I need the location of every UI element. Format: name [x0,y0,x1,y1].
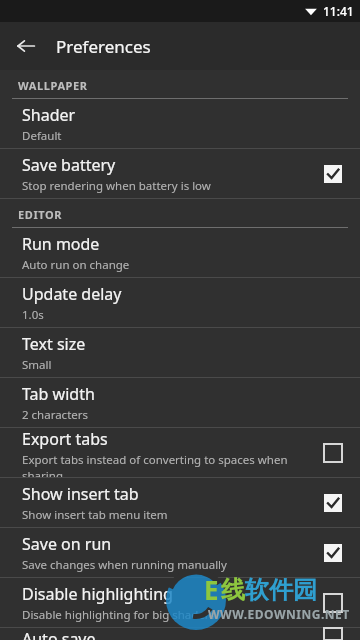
staticText: Disable highlighting for big shaders [22,607,216,623]
staticText: Auto save [22,628,96,640]
staticText: Export tabs instead of converting to spa… [22,452,314,477]
button[interactable]: Disable highlighting [0,578,360,628]
staticText: 11:41 [323,3,354,19]
staticText: Run mode [22,233,100,255]
staticText: Export tabs [22,428,108,450]
staticText: 园 [293,575,317,605]
staticText: 软件 [245,575,293,605]
staticText: 线 [221,575,245,605]
button[interactable]: Save on run [0,528,360,578]
staticText: Small [22,357,52,373]
staticText: Stop rendering when battery is low [22,178,211,194]
staticText: Shader [22,104,76,126]
staticText: Preferences [56,35,151,58]
button[interactable]: Update delay [0,278,360,328]
staticText: Save battery [22,154,116,176]
button[interactable]: Show insert tab [0,478,360,528]
staticText: Show insert tab [22,483,139,505]
staticText: Auto run on change [22,257,130,273]
staticText: Tab width [22,383,95,405]
staticText: Save changes when running manually [22,557,227,573]
staticText: WWW.EDOWNING.NET [208,606,350,622]
button[interactable]: Shader [0,99,360,149]
button[interactable]: Back [6,26,46,66]
staticText: Update delay [22,283,122,305]
button[interactable]: Auto save [0,628,360,640]
staticText: EDITOR [18,207,63,222]
staticText: Save on run [22,533,112,555]
button[interactable]: Export tabs [0,428,360,478]
staticText: E [204,572,219,607]
staticText: Default [22,128,62,144]
staticText: Text size [22,333,86,355]
staticText: 1.0s [22,307,44,323]
button[interactable]: Save battery [0,149,360,199]
button[interactable]: Tab width [0,378,360,428]
staticText: 2 characters [22,407,89,423]
staticText: Show insert tab menu item [22,507,168,523]
staticText: WALLPAPER [18,78,88,93]
button[interactable]: Run mode [0,228,360,278]
button[interactable]: Text size [0,328,360,378]
staticText: Disable highlighting [22,583,173,605]
